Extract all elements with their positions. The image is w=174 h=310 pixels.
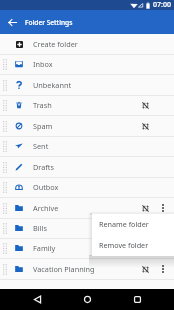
button[interactable]: Notifications off [139, 95, 152, 115]
button[interactable]: Unbekannt [0, 75, 174, 95]
button[interactable]: Back [12, 289, 62, 310]
staticText: Outbox [33, 182, 59, 192]
button[interactable]: Inbox [0, 54, 174, 74]
button[interactable]: Notifications off [139, 198, 152, 218]
button[interactable]: Trash [0, 95, 174, 115]
staticText: Archive [33, 203, 59, 213]
staticText: Spam [33, 121, 53, 131]
button[interactable]: Back [0, 10, 24, 34]
button[interactable]: Notifications off [139, 259, 152, 279]
staticText: Remove folder [99, 240, 149, 250]
button[interactable]: Family [0, 238, 174, 258]
staticText: Bills [33, 223, 47, 233]
staticText: Inbox [33, 59, 53, 69]
button[interactable]: More options [156, 259, 169, 279]
staticText: Folder Settings [25, 18, 73, 27]
button[interactable]: Vacation Planning [0, 259, 174, 279]
staticText: Sent [33, 141, 49, 151]
staticText: Family [33, 243, 56, 253]
button[interactable]: Archive [0, 198, 174, 218]
button[interactable]: Rename folder [92, 214, 174, 235]
staticText: Create folder [33, 39, 78, 49]
button[interactable]: Create folder [0, 34, 174, 54]
button[interactable]: Notifications off [139, 116, 152, 136]
staticText: Unbekannt [33, 80, 72, 90]
button[interactable]: Recents [112, 289, 162, 310]
staticText: 07:00 [153, 0, 171, 10]
button[interactable]: More options [156, 198, 169, 218]
button[interactable]: Drafts [0, 157, 174, 177]
staticText: Vacation Planning [33, 264, 95, 274]
button[interactable]: Bills [0, 218, 174, 238]
button[interactable]: Remove folder [92, 235, 174, 256]
button[interactable]: Sent [0, 136, 174, 156]
button[interactable]: Outbox [0, 177, 174, 197]
button[interactable]: Home [62, 289, 112, 310]
button[interactable]: Spam [0, 116, 174, 136]
staticText: Drafts [33, 162, 54, 172]
staticText: Trash [33, 100, 52, 110]
staticText: Rename folder [99, 219, 149, 229]
